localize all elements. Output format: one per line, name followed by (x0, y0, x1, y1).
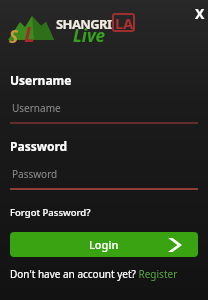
button[interactable]: Login (10, 232, 198, 257)
button[interactable]: S (8, 9, 64, 41)
staticText: L (24, 20, 35, 49)
staticText: Don't have an account yet? Register (10, 267, 178, 281)
button[interactable]: Password (10, 167, 198, 190)
staticText: Live (73, 24, 106, 47)
staticText: LA (115, 13, 133, 32)
button[interactable]: X (195, 4, 205, 23)
button[interactable]: Forgot Password? (10, 206, 91, 219)
staticText: S (9, 25, 19, 48)
staticText: Password (12, 167, 58, 181)
staticText: Login (89, 237, 119, 252)
button[interactable]: Username (10, 101, 198, 124)
staticText: Username (12, 101, 61, 115)
staticText: Username (10, 72, 72, 88)
button[interactable]: Don't have an account yet? Register (10, 267, 178, 281)
staticText: Password (10, 138, 68, 154)
staticText: SHANGRI (56, 15, 112, 33)
